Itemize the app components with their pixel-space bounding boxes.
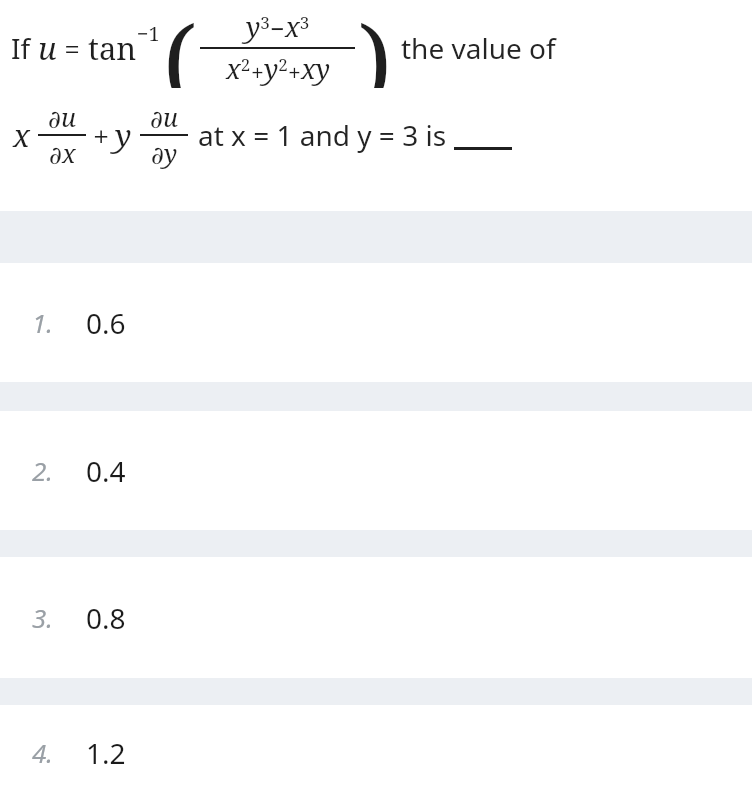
- staticText: ): [358, 0, 392, 88]
- staticText: y: [164, 136, 178, 170]
- staticText: +: [93, 116, 110, 155]
- button[interactable]: 4.: [0, 705, 752, 800]
- staticText: x: [13, 114, 30, 156]
- button[interactable]: 1.: [0, 263, 752, 382]
- staticText: y: [115, 114, 132, 156]
- staticText: ∂: [48, 105, 61, 134]
- staticText: 4.: [32, 735, 53, 770]
- staticText: +: [288, 56, 301, 87]
- staticText: (: [163, 0, 197, 88]
- staticText: −1: [137, 20, 160, 47]
- staticText: 1.: [32, 305, 53, 340]
- staticText: 0.8: [86, 599, 126, 637]
- staticText: If: [11, 29, 38, 67]
- staticText: ∂: [150, 105, 163, 134]
- staticText: y2: [264, 50, 288, 87]
- staticText: u: [61, 100, 76, 134]
- staticText: y3: [246, 8, 270, 45]
- staticText: ∂: [151, 141, 164, 170]
- staticText: x2: [226, 50, 251, 87]
- staticText: 2.: [32, 453, 53, 488]
- staticText: 3.: [32, 600, 53, 635]
- staticText: 1.2: [86, 734, 126, 772]
- staticText: 0.4: [86, 452, 126, 490]
- staticText: −: [270, 11, 285, 45]
- staticText: 0.6: [86, 304, 126, 342]
- staticText: +: [251, 56, 264, 87]
- button[interactable]: 3.: [0, 557, 752, 678]
- staticText: the value of: [401, 29, 556, 67]
- staticText: u: [163, 100, 178, 134]
- staticText: u: [38, 27, 57, 69]
- button[interactable]: 2.: [0, 411, 752, 530]
- staticText: =: [57, 29, 88, 67]
- staticText: at x = 1 and y = 3 is: [198, 116, 447, 154]
- staticText: xy: [301, 50, 330, 87]
- staticText: x3: [285, 8, 310, 45]
- staticText: ∂: [49, 141, 62, 170]
- staticText: x: [62, 136, 76, 170]
- staticText: tan: [88, 27, 137, 69]
